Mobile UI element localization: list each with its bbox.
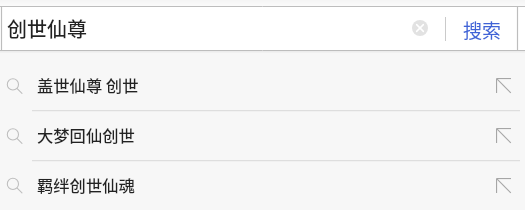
button[interactable]: 搜索: [446, 6, 518, 51]
button[interactable]: Use this suggestion: [489, 171, 519, 201]
staticText: 盖世仙尊 创世: [37, 73, 139, 97]
staticText: 创世仙尊: [7, 14, 87, 43]
staticText: 搜索: [463, 16, 502, 44]
button[interactable]: 大梦回仙创世: [0, 111, 525, 161]
button[interactable]: 羁绊创世仙魂: [0, 161, 525, 210]
button[interactable]: Clear text: [407, 12, 441, 46]
staticText: 羁绊创世仙魂: [37, 173, 135, 197]
button[interactable]: Use this suggestion: [489, 121, 519, 151]
button[interactable]: 盖世仙尊 创世: [0, 61, 525, 111]
staticText: 大梦回仙创世: [37, 123, 135, 147]
button[interactable]: Use this suggestion: [489, 71, 519, 101]
